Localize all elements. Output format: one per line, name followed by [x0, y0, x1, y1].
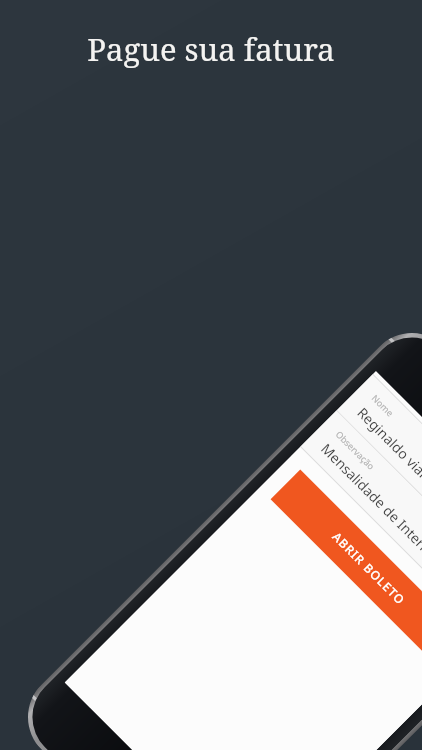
staticText: Observação: [333, 428, 378, 472]
button[interactable]: ABRIR BOLETO: [271, 470, 422, 666]
staticText: ABRIR BOLETO: [329, 528, 409, 608]
staticText: Nome: [370, 392, 396, 419]
staticText: Mensalidade de Internet: [317, 439, 422, 567]
button[interactable]: Observação: [301, 411, 422, 636]
staticText: Reginaldo viana teixeira: [353, 403, 422, 528]
button[interactable]: Nome: [337, 375, 422, 600]
staticText: Pague sua fatura: [0, 28, 422, 70]
